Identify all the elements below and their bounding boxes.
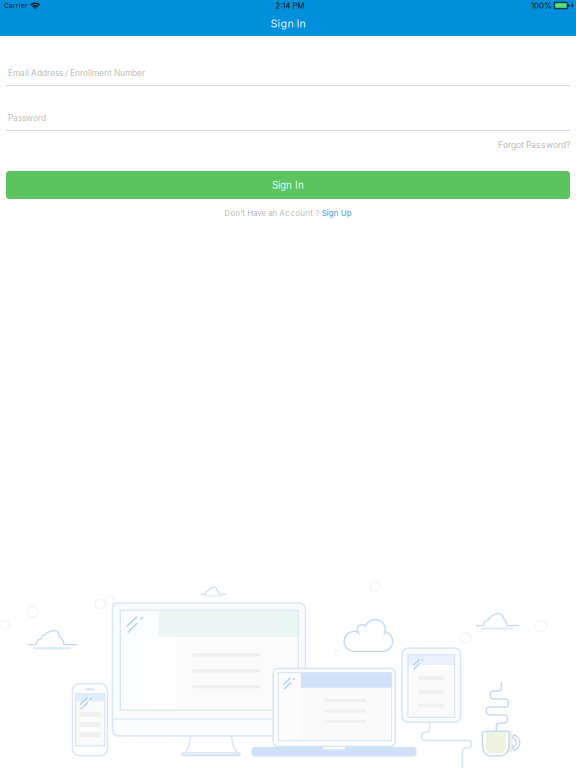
staticText: Don't Have an Account ? xyxy=(224,208,319,218)
staticText: 100% xyxy=(531,1,552,10)
button[interactable]: Sign Up xyxy=(322,208,352,218)
staticText: 2:14 PM xyxy=(275,1,304,10)
button[interactable]: Sign In xyxy=(6,171,570,199)
staticText: Sign Up xyxy=(322,208,352,218)
staticText: Sign In xyxy=(272,179,304,191)
staticText: Password xyxy=(8,113,46,123)
staticText: Forgot Password? xyxy=(498,140,570,150)
staticText: Email Address / Enrollment Number xyxy=(8,68,145,78)
button[interactable]: Forgot Password? xyxy=(498,135,570,155)
staticText: Carrier xyxy=(4,1,28,10)
staticText: Sign In xyxy=(270,17,305,30)
